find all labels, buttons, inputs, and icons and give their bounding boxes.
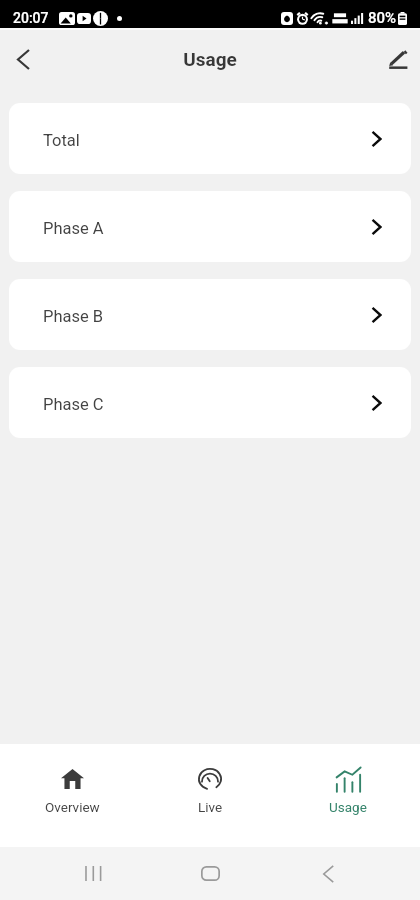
staticText: Phase A (43, 219, 104, 238)
staticText: 80% (368, 9, 397, 27)
button[interactable]: Live (141, 744, 279, 815)
staticText: Usage (329, 799, 367, 815)
staticText: Usage (183, 48, 237, 70)
button[interactable]: Phase B (9, 279, 411, 350)
staticText: Live (198, 799, 223, 815)
staticText: Overview (45, 799, 100, 815)
button[interactable]: Phase A (9, 191, 411, 262)
button[interactable]: Edit (376, 37, 420, 81)
staticText: Phase C (43, 395, 104, 414)
button[interactable]: Total (9, 103, 411, 174)
button[interactable]: Usage (279, 744, 417, 815)
staticText: 20:07 (13, 10, 49, 26)
button[interactable]: Back (0, 36, 46, 82)
button[interactable]: Overview (3, 744, 141, 815)
button[interactable]: Phase C (9, 367, 411, 438)
staticText: Total (43, 131, 80, 150)
staticText: Phase B (43, 307, 104, 326)
button[interactable]: Back (269, 847, 387, 900)
button[interactable]: Home (151, 847, 269, 900)
button[interactable]: Recent apps (33, 847, 151, 900)
